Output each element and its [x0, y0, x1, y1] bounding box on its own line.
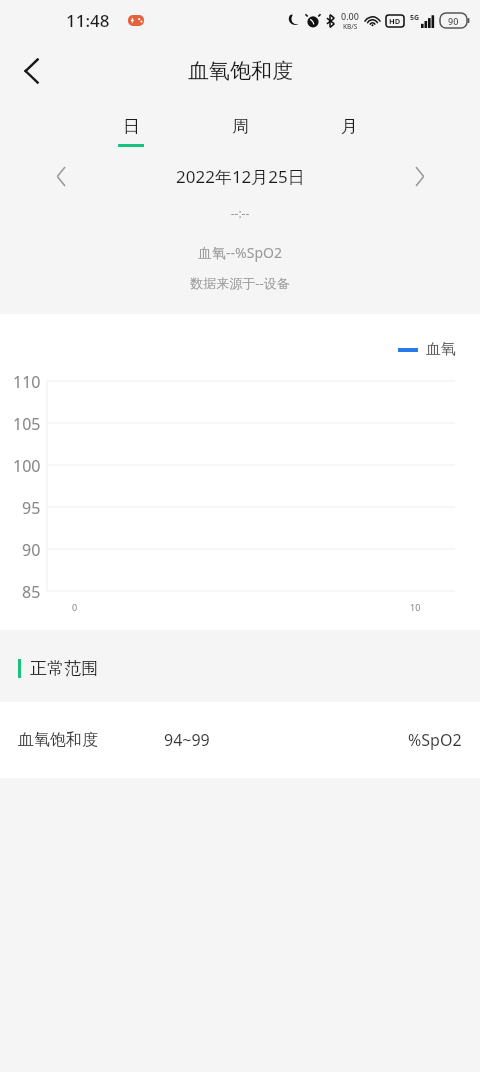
staticText: 日 [123, 116, 140, 137]
staticText: KB/S [343, 22, 358, 31]
staticText: 10 [410, 601, 421, 613]
button[interactable]: 周 [186, 116, 295, 147]
staticText: 数据来源于--设备 [0, 274, 480, 292]
staticText: 94~99 [164, 729, 210, 751]
staticText: 血氧饱和度 [188, 58, 293, 84]
staticText: --:-- [0, 205, 480, 221]
staticText: 周 [232, 116, 249, 137]
button[interactable]: 日 [76, 116, 186, 147]
staticText: 95 [22, 497, 41, 519]
staticText: 100 [13, 455, 41, 477]
staticText: 血氧饱和度 [18, 730, 98, 750]
staticText: 正常范围 [30, 658, 98, 679]
staticText: 2022年12月25日 [176, 165, 305, 188]
button[interactable]: 后一天 [402, 159, 436, 193]
button[interactable]: 前一天 [44, 159, 78, 193]
button[interactable]: 月 [295, 116, 404, 147]
staticText: 0 [72, 601, 78, 613]
staticText: 90 [22, 539, 41, 561]
staticText: 0.00 [341, 10, 359, 22]
staticText: %SpO2 [408, 729, 462, 751]
staticText: 月 [341, 116, 358, 137]
staticText: HD [389, 16, 401, 26]
staticText: 11:48 [66, 9, 110, 32]
button[interactable]: 血氧饱和度 [0, 702, 480, 778]
button[interactable]: 返回 [8, 47, 56, 95]
staticText: 血氧 [426, 340, 456, 359]
staticText: 85 [22, 581, 41, 601]
staticText: 血氧--%SpO2 [0, 243, 480, 262]
staticText: 90 [448, 15, 459, 27]
staticText: 5G [410, 13, 420, 23]
staticText: 105 [13, 413, 41, 435]
staticText: 110 [13, 371, 41, 393]
